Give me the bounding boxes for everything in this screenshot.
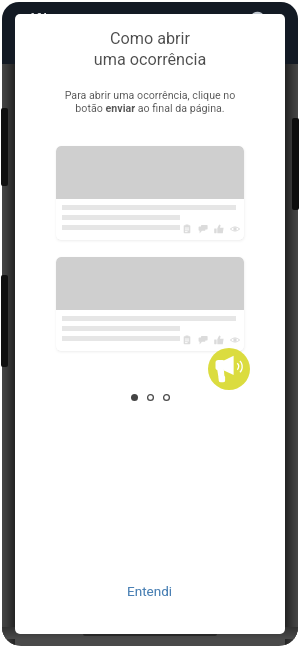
staticText: Entendi <box>127 583 173 599</box>
button[interactable]: Entendi <box>15 575 285 607</box>
button[interactable]: Nova ocorrência <box>208 348 250 390</box>
staticText: Para abrir uma ocorrência, clique no bot… <box>15 89 285 115</box>
staticText: 6:04 <box>30 12 47 22</box>
staticText: Como abrir uma ocorrência <box>15 29 285 69</box>
